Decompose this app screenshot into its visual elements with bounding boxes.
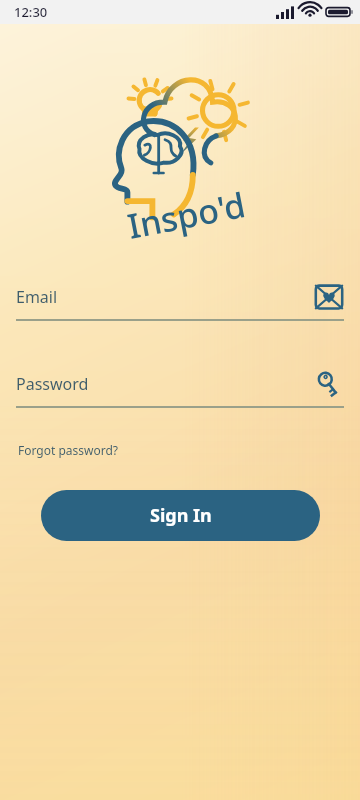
staticText: Password [16, 373, 314, 395]
other: Password [314, 369, 344, 399]
staticText: Email [16, 286, 314, 308]
staticText: Sign In [150, 503, 212, 528]
button[interactable]: Password [0, 367, 360, 408]
button[interactable]: Sign In [41, 490, 320, 541]
button[interactable]: Forgot password? [16, 438, 121, 462]
staticText: 12:30 [14, 3, 48, 21]
other: Email [314, 282, 344, 312]
staticText: Inspo'd [124, 181, 249, 249]
staticText: Forgot password? [18, 442, 119, 458]
button[interactable]: Email [0, 280, 360, 321]
